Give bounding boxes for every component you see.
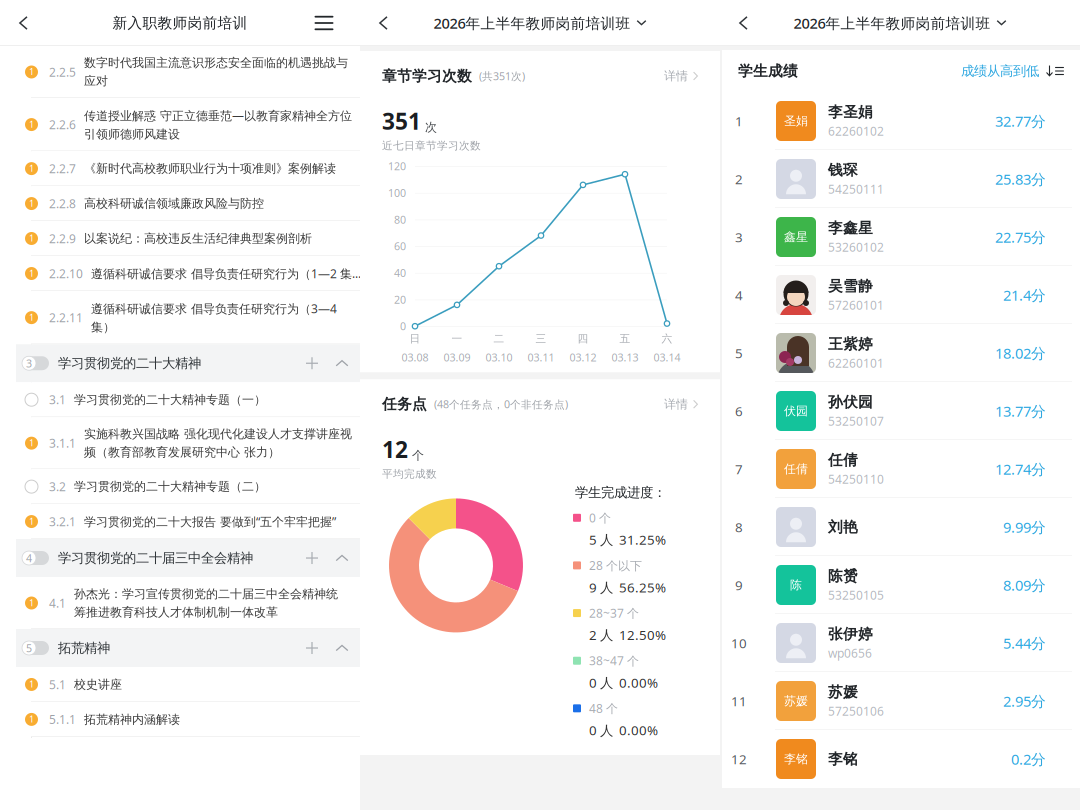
button[interactable]: 11	[722, 672, 1080, 730]
button[interactable]: Add	[297, 633, 327, 663]
button[interactable]: Back	[0, 0, 61, 46]
staticText: 100	[388, 186, 406, 200]
staticText: 孙杰光：学习宣传贯彻党的二十届三中全会精神统筹推进教育科技人才体制机制一体改革	[74, 586, 338, 619]
staticText: 1	[29, 713, 34, 725]
staticText: 60	[394, 239, 406, 253]
button[interactable]: 9	[722, 556, 1080, 614]
button[interactable]: 1	[0, 256, 360, 291]
staticText: 03.08	[401, 350, 428, 364]
staticText: 任倩	[828, 451, 858, 469]
staticText: 1	[29, 65, 34, 78]
staticText: 62260102	[828, 123, 884, 139]
staticText: 25.83分	[995, 169, 1046, 189]
staticText: 57260101	[828, 297, 884, 313]
staticText: 5.1.1	[49, 711, 76, 727]
staticText: 三	[535, 332, 546, 345]
staticText: 实施科教兴国战略 强化现代化建设人才支撑讲座视频（教育部教育发展研究中心 张力）	[84, 427, 352, 460]
button[interactable]: 1	[0, 46, 360, 98]
staticText: (共351次)	[479, 69, 525, 83]
staticText: 1	[29, 678, 34, 690]
staticText: 9.99分	[1003, 517, 1046, 537]
button[interactable]: 1	[0, 417, 360, 469]
button[interactable]: Back	[360, 0, 421, 46]
button[interactable]: 3	[0, 344, 360, 382]
button[interactable]: 1	[722, 92, 1080, 150]
button[interactable]: 5	[0, 629, 360, 667]
staticText: 遵循科研诚信要求 倡导负责任研究行为（1—2 集）	[91, 265, 363, 282]
button[interactable]: 1	[0, 151, 360, 186]
button[interactable]: Add	[297, 543, 327, 573]
staticText: 48 个	[589, 700, 618, 716]
staticText: 3.1	[49, 392, 66, 408]
staticText: 18.02分	[995, 343, 1046, 363]
staticText: 32.77分	[995, 111, 1046, 131]
staticText: 4	[735, 286, 743, 304]
button[interactable]: Collapse	[327, 543, 357, 573]
staticText: 六	[661, 332, 672, 345]
button[interactable]: 1	[0, 577, 360, 629]
button[interactable]: 1	[0, 702, 360, 737]
staticText: 2.2.11	[49, 310, 83, 326]
staticText: 28~37 个	[589, 605, 639, 621]
staticText: 学习贯彻党的二十大精神专题（二）	[74, 479, 266, 494]
button[interactable]: 4	[0, 539, 360, 577]
staticText: 03.14	[653, 350, 680, 364]
staticText: 54250111	[828, 181, 884, 197]
button[interactable]: 1	[0, 504, 360, 539]
button[interactable]: 7	[722, 440, 1080, 498]
staticText: 以案说纪：高校违反生活纪律典型案例剖析	[84, 231, 312, 246]
button[interactable]: 详情	[664, 397, 698, 412]
staticText: 2 人 12.50%	[589, 626, 666, 644]
staticText: 近七日章节学习次数	[382, 139, 481, 152]
staticText: 12	[731, 750, 747, 768]
staticText: 62260101	[828, 355, 884, 371]
staticText: 10	[731, 634, 747, 652]
staticText: 王紫婷	[828, 335, 873, 353]
staticText: 任务点	[382, 395, 427, 413]
button[interactable]: 3.2	[0, 469, 360, 504]
staticText: 张伊婷	[828, 625, 873, 643]
button[interactable]: 1	[0, 667, 360, 702]
staticText: 学习贯彻党的二十大报告 要做到“五个牢牢把握”	[84, 514, 336, 529]
button[interactable]: 8	[722, 498, 1080, 556]
staticText: 章节学习次数	[382, 67, 472, 85]
staticText: 9	[735, 576, 743, 594]
staticText: 28 个以下	[589, 557, 642, 573]
button[interactable]: Add	[297, 348, 327, 378]
button[interactable]: 成绩从高到低	[961, 63, 1064, 79]
button[interactable]: 6	[722, 382, 1080, 440]
staticText: 2.2.6	[49, 117, 76, 132]
button[interactable]: Collapse	[327, 633, 357, 663]
staticText: 刘艳	[828, 518, 858, 536]
button[interactable]: 3.1	[0, 382, 360, 417]
button[interactable]: Collapse	[327, 348, 357, 378]
staticText: 新入职教师岗前培训	[112, 14, 247, 32]
button[interactable]: 5	[722, 324, 1080, 382]
button[interactable]: 1	[0, 98, 360, 151]
button[interactable]: 2	[722, 150, 1080, 208]
staticText: 1	[735, 112, 743, 130]
staticText: 学生完成进度：	[575, 484, 666, 501]
staticText: 1	[29, 267, 34, 279]
staticText: 孙伏园	[828, 393, 873, 411]
staticText: 2.2.5	[49, 64, 76, 80]
staticText: 38~47 个	[589, 653, 639, 669]
button[interactable]: 3	[722, 208, 1080, 266]
button[interactable]: Menu	[302, 0, 346, 46]
button[interactable]: 1	[0, 221, 360, 256]
staticText: 11	[731, 692, 747, 710]
staticText: 8.09分	[1003, 575, 1046, 595]
button[interactable]: 12	[722, 730, 1080, 788]
button[interactable]: 10	[722, 614, 1080, 672]
staticText: 苏媛	[828, 683, 858, 701]
button[interactable]: 1	[0, 186, 360, 221]
staticText: 五	[619, 332, 630, 345]
button[interactable]: Back	[720, 0, 781, 46]
staticText: 传道授业解惑 守正立德垂范—以教育家精神全方位引领师德师风建设	[84, 107, 352, 142]
staticText: 2026年上半年教师岗前培训班	[433, 13, 630, 33]
staticText: 0 人 0.00%	[589, 721, 658, 739]
button[interactable]: 1	[0, 291, 360, 344]
staticText: 一	[451, 332, 462, 345]
button[interactable]: 详情	[664, 69, 698, 83]
button[interactable]: 4	[722, 266, 1080, 324]
